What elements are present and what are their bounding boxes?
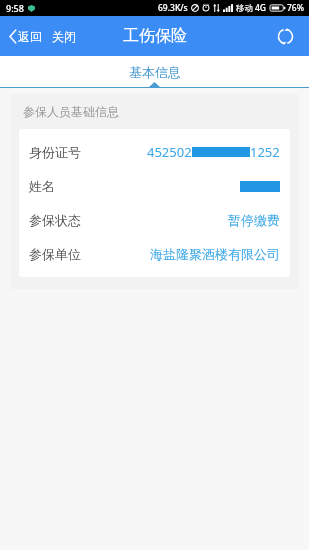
staticText: 基本信息 [129,64,181,80]
staticText: 1252 [250,143,280,161]
button[interactable]: Refresh [271,22,299,50]
staticText: 4G [255,2,267,14]
button[interactable]: 关闭 [50,25,78,48]
staticText: 暂停缴费 [228,212,280,228]
staticText: 返回 [18,29,42,44]
staticText: 9:58 [6,2,24,14]
staticText: 参保人员基础信息 [23,104,119,119]
staticText: 海盐隆聚酒楼有限公司 [150,246,280,262]
staticText: 参保状态 [29,212,81,228]
button[interactable]: 参保状态 [29,203,280,237]
staticText: 452502 [147,143,192,161]
staticText: 参保单位 [29,246,81,262]
staticText: 移动 [236,3,253,14]
staticText: 关闭 [52,29,76,44]
staticText: 69.3K/s [158,2,188,14]
button[interactable]: 返回 [7,25,44,48]
staticText: 姓名 [29,178,55,194]
button[interactable]: 基本信息 [111,60,199,84]
button[interactable]: 参保单位 [29,237,280,271]
staticText: 76% [287,2,304,14]
staticText: 身份证号 [29,144,81,160]
button[interactable]: 姓名 [29,169,280,203]
staticText: 工伤保险 [123,26,187,46]
button[interactable]: 身份证号 [29,135,280,169]
